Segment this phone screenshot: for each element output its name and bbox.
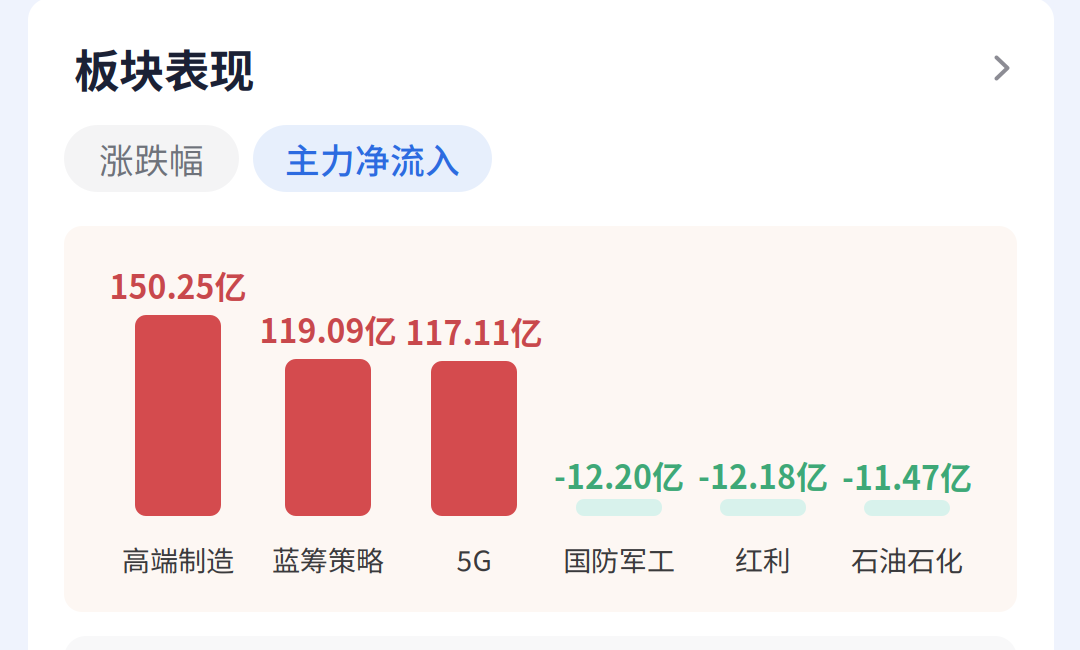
staticText: 国防军工 bbox=[563, 539, 675, 579]
button[interactable]: 涨跌幅 bbox=[64, 125, 239, 192]
staticText: -12.20亿 bbox=[554, 452, 684, 498]
staticText: 150.25亿 bbox=[109, 262, 246, 308]
staticText: 119.09亿 bbox=[259, 306, 396, 352]
staticText: -12.18亿 bbox=[698, 452, 828, 498]
button[interactable]: 板块表现 bbox=[74, 33, 1010, 103]
staticText: 高端制造 bbox=[122, 539, 234, 579]
staticText: 117.11亿 bbox=[405, 308, 542, 354]
staticText: 蓝筹策略 bbox=[272, 539, 384, 579]
staticText: -11.47亿 bbox=[842, 453, 972, 499]
staticText: 涨跌幅 bbox=[99, 133, 204, 184]
staticText: 5G bbox=[456, 539, 491, 579]
staticText: 板块表现 bbox=[74, 35, 254, 101]
button[interactable]: 主力净流入 bbox=[253, 125, 492, 192]
staticText: 主力净流入 bbox=[285, 133, 460, 184]
staticText: 石油石化 bbox=[851, 539, 963, 579]
staticText: 红利 bbox=[735, 539, 791, 579]
